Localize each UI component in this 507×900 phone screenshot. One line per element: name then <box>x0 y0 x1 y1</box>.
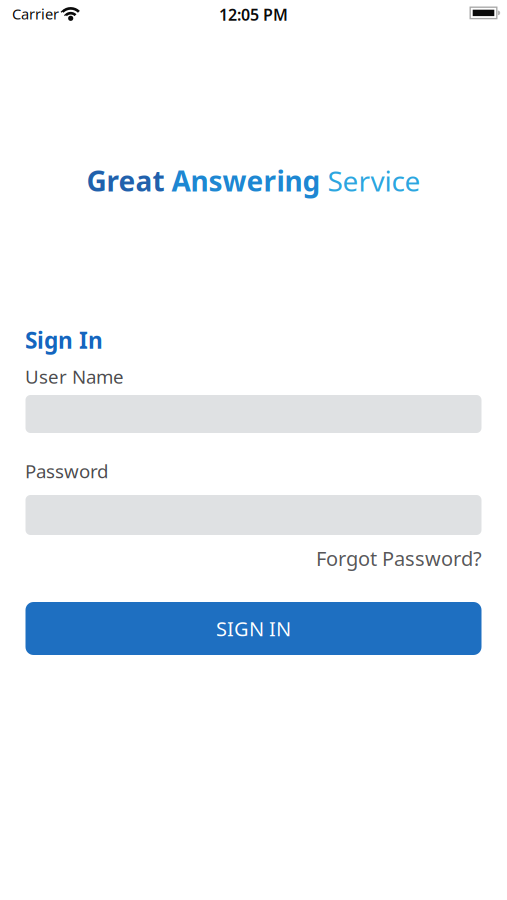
staticText: 12:05 PM <box>219 4 288 25</box>
staticText: Password <box>25 458 108 483</box>
button[interactable]: SIGN IN <box>25 602 481 655</box>
staticText: Carrier <box>12 4 59 23</box>
staticText: Sign In <box>25 325 103 355</box>
staticText: User Name <box>25 364 124 389</box>
staticText: Forgot Password? <box>316 545 482 572</box>
button[interactable]: Forgot Password? <box>316 545 482 572</box>
staticText: Answering <box>171 162 320 199</box>
staticText: SIGN IN <box>216 615 291 642</box>
staticText: Great <box>86 162 164 199</box>
staticText: Service <box>327 162 420 199</box>
